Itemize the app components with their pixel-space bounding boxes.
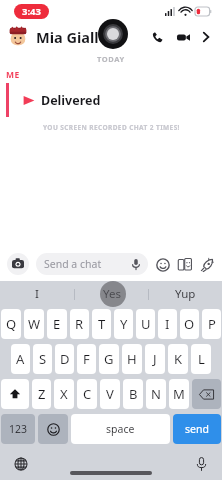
button[interactable]: Z bbox=[32, 379, 51, 409]
button[interactable]: Video call bbox=[170, 26, 196, 48]
button[interactable]: Q bbox=[1, 309, 21, 339]
staticText: 123 bbox=[9, 422, 28, 436]
staticText: Send a chat bbox=[44, 257, 102, 271]
button[interactable]: L bbox=[191, 344, 211, 374]
button[interactable]: Shift bbox=[1, 379, 29, 409]
button[interactable]: R bbox=[70, 309, 89, 339]
staticText: W bbox=[28, 315, 41, 333]
staticText: M bbox=[173, 385, 185, 403]
button[interactable]: space bbox=[71, 414, 170, 444]
staticText: Z bbox=[38, 385, 46, 403]
staticText: Mia Giallo bbox=[36, 27, 108, 47]
staticText: ME bbox=[6, 69, 20, 81]
staticText: T bbox=[98, 315, 106, 333]
staticText: N bbox=[151, 385, 161, 403]
button[interactable]: A bbox=[11, 344, 30, 374]
staticText: S bbox=[39, 350, 47, 368]
staticText: X bbox=[60, 385, 68, 403]
staticText: G bbox=[104, 350, 114, 368]
staticText: K bbox=[174, 350, 183, 368]
button[interactable]: M bbox=[169, 379, 189, 409]
button[interactable]: Yes bbox=[75, 281, 148, 307]
button[interactable]: Change language bbox=[12, 455, 30, 473]
button[interactable]: S bbox=[33, 344, 52, 374]
staticText: 3:43 bbox=[22, 5, 41, 18]
button[interactable]: K bbox=[168, 344, 188, 374]
staticText: Yup bbox=[175, 286, 196, 302]
staticText: YOU SCREEN RECORDED CHAT 2 TIMES! bbox=[43, 123, 180, 132]
staticText: space bbox=[106, 422, 135, 436]
button[interactable]: Delivered bbox=[0, 83, 222, 117]
button[interactable]: C bbox=[77, 379, 97, 409]
staticText: D bbox=[60, 350, 70, 368]
staticText: send bbox=[185, 422, 209, 436]
staticText: H bbox=[127, 350, 137, 368]
staticText: C bbox=[83, 385, 92, 403]
staticText: Yes bbox=[103, 286, 121, 302]
button[interactable]: Dictation bbox=[192, 455, 210, 473]
button[interactable]: Camera bbox=[7, 253, 29, 275]
button[interactable]: F bbox=[77, 344, 96, 374]
button[interactable]: Games bbox=[198, 256, 215, 273]
staticText: A bbox=[16, 350, 25, 368]
staticText: Y bbox=[120, 315, 128, 333]
button[interactable]: Y bbox=[114, 309, 133, 339]
button[interactable]: Cameos bbox=[176, 256, 193, 273]
staticText: U bbox=[141, 315, 151, 333]
button[interactable]: I bbox=[0, 281, 74, 307]
staticText: Q bbox=[6, 315, 17, 333]
button[interactable]: Emoji bbox=[38, 414, 68, 444]
button[interactable]: I bbox=[158, 309, 177, 339]
button[interactable]: More bbox=[196, 26, 216, 48]
staticText: O bbox=[184, 315, 195, 333]
button[interactable]: B bbox=[123, 379, 143, 409]
staticText: TODAY bbox=[97, 54, 125, 64]
button[interactable]: V bbox=[100, 379, 120, 409]
button[interactable]: X bbox=[54, 379, 74, 409]
button[interactable]: send bbox=[173, 414, 221, 444]
button[interactable]: Backspace bbox=[192, 379, 221, 409]
button[interactable]: Send a chat bbox=[36, 253, 148, 275]
button[interactable]: E bbox=[47, 309, 67, 339]
staticText: I bbox=[35, 286, 39, 302]
staticText: F bbox=[83, 350, 90, 368]
button[interactable]: H bbox=[122, 344, 142, 374]
staticText: Delivered bbox=[41, 92, 101, 109]
staticText: P bbox=[208, 315, 216, 333]
button[interactable]: J bbox=[145, 344, 165, 374]
button[interactable]: U bbox=[136, 309, 155, 339]
button[interactable]: P bbox=[202, 309, 221, 339]
button[interactable]: T bbox=[92, 309, 111, 339]
staticText: E bbox=[53, 315, 61, 333]
button[interactable]: Call bbox=[144, 26, 170, 48]
button[interactable]: Stickers bbox=[154, 256, 171, 273]
staticText: I bbox=[165, 315, 170, 333]
button[interactable]: N bbox=[146, 379, 166, 409]
staticText: J bbox=[153, 350, 157, 368]
button[interactable]: G bbox=[99, 344, 119, 374]
button[interactable]: 123 bbox=[1, 414, 35, 444]
staticText: L bbox=[198, 350, 205, 368]
button[interactable]: W bbox=[24, 309, 44, 339]
staticText: V bbox=[106, 385, 114, 403]
button[interactable]: D bbox=[55, 344, 74, 374]
staticText: R bbox=[75, 315, 84, 333]
button[interactable]: Profile bbox=[6, 25, 30, 49]
staticText: B bbox=[129, 385, 138, 403]
button[interactable]: Yup bbox=[149, 281, 222, 307]
button[interactable]: O bbox=[180, 309, 199, 339]
